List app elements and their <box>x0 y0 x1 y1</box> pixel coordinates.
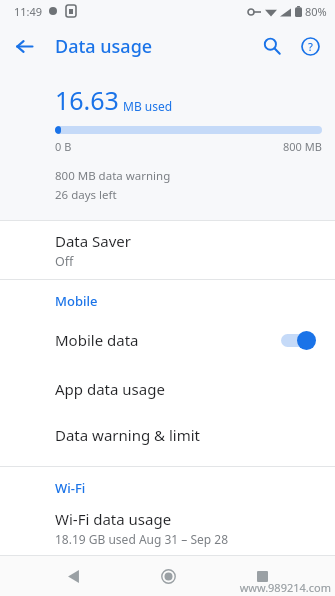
button[interactable]: Wi-Fi data usage <box>0 501 335 555</box>
staticText: 800 MB <box>283 139 322 154</box>
button[interactable]: Back <box>51 556 95 596</box>
staticText: 26 days left <box>55 187 117 203</box>
staticText: 800 MB data warning <box>55 168 171 184</box>
staticText: ? <box>308 39 313 54</box>
staticText: Mobile data <box>55 330 139 350</box>
button[interactable]: Search <box>253 27 291 65</box>
staticText: 80% <box>305 4 327 19</box>
staticText: www.989214.com <box>239 580 331 595</box>
staticText: Data usage <box>55 34 153 59</box>
button[interactable]: Home <box>146 556 190 596</box>
staticText: Off <box>55 253 74 270</box>
button[interactable]: Recent apps <box>240 556 284 596</box>
staticText: Mobile <box>55 292 98 310</box>
staticText: Data Saver <box>55 231 132 251</box>
staticText: 0 B <box>55 139 72 154</box>
button[interactable]: Back <box>6 28 42 64</box>
button[interactable]: Help <box>291 27 329 65</box>
staticText: MB used <box>123 98 173 114</box>
staticText: Wi-Fi <box>55 479 86 497</box>
button[interactable]: App data usage <box>0 366 335 412</box>
staticText: App data usage <box>55 379 165 399</box>
staticText: 18.19 GB used Aug 31 – Sep 28 <box>55 531 229 547</box>
staticText: 11:49 <box>14 4 43 19</box>
button[interactable]: Data Saver <box>0 221 335 279</box>
staticText: Data warning & limit <box>55 425 200 445</box>
staticText: Wi-Fi data usage <box>55 509 172 529</box>
staticText: 16.63 <box>55 83 119 117</box>
button[interactable]: Data warning & limit <box>0 412 335 458</box>
button[interactable]: Mobile data <box>0 314 335 366</box>
